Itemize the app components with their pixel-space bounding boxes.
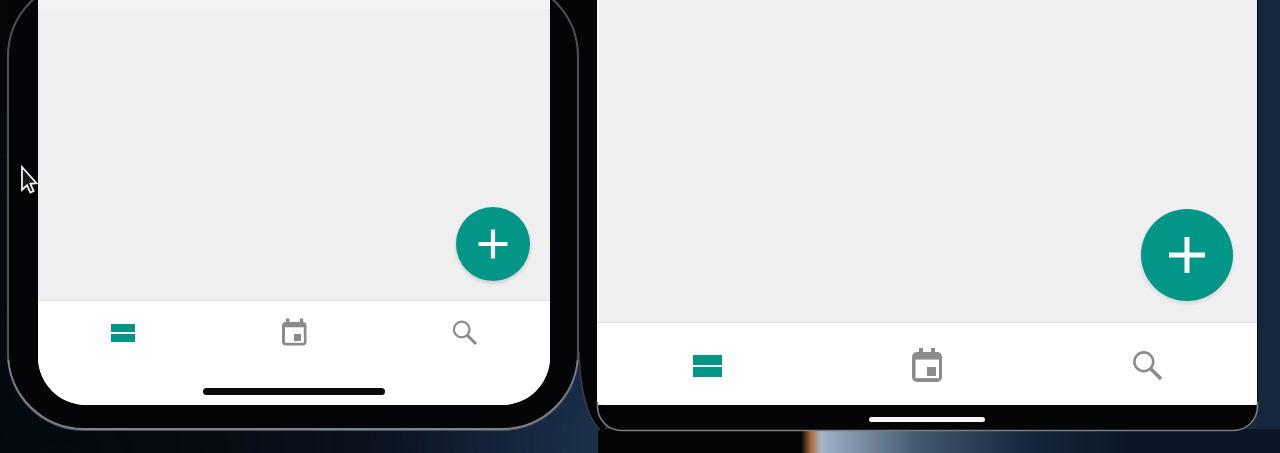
- button[interactable]: [1141, 209, 1233, 301]
- button[interactable]: [693, 355, 722, 377]
- button[interactable]: [111, 324, 135, 342]
- button[interactable]: [279, 317, 309, 350]
- button[interactable]: [1128, 346, 1168, 386]
- button[interactable]: [456, 207, 530, 281]
- button[interactable]: [909, 346, 945, 386]
- button[interactable]: [448, 316, 482, 350]
